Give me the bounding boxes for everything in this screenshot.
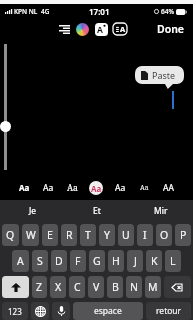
- button[interactable]: 123: [2, 302, 28, 320]
- staticText: V: [93, 280, 100, 294]
- button[interactable]: V: [88, 276, 104, 298]
- staticText: W: [26, 228, 36, 242]
- button[interactable]: P: [175, 224, 191, 246]
- button[interactable]: Aa: [108, 175, 132, 200]
- button[interactable]: Backspace: [164, 276, 191, 298]
- staticText: 64%: [161, 7, 174, 16]
- button[interactable]: L: [165, 250, 181, 272]
- staticText: G: [93, 254, 101, 268]
- staticText: Aa: [91, 183, 102, 194]
- button[interactable]: Outline: [58, 23, 71, 36]
- staticText: C: [74, 280, 81, 294]
- staticText: A: [97, 24, 103, 36]
- button[interactable]: Colour: [76, 23, 89, 36]
- staticText: Q: [6, 228, 15, 242]
- button[interactable]: B: [107, 276, 123, 298]
- button[interactable]: Aa: [36, 175, 60, 200]
- staticText: K: [151, 254, 158, 268]
- staticText: 17:01: [89, 6, 110, 17]
- staticText: Aa: [67, 182, 78, 194]
- button[interactable]: Z: [32, 276, 47, 298]
- button[interactable]: N: [126, 276, 142, 298]
- button[interactable]: O: [156, 224, 172, 246]
- staticText: H: [112, 254, 120, 268]
- staticText: M: [148, 280, 158, 294]
- staticText: Aa: [140, 183, 149, 193]
- staticText: AA: [163, 182, 174, 194]
- staticText: espace: [94, 305, 122, 317]
- staticText: Aa: [43, 182, 54, 194]
- button[interactable]: I: [137, 224, 153, 246]
- button[interactable]: Aa: [84, 175, 108, 200]
- button[interactable]: A: [12, 250, 29, 272]
- staticText: X: [55, 280, 62, 294]
- staticText: I: [143, 228, 147, 242]
- staticText: Paste: [152, 69, 176, 81]
- staticText: B: [112, 280, 119, 294]
- staticText: Aa: [19, 182, 30, 193]
- button[interactable]: Dictation: [52, 302, 70, 320]
- staticText: P: [180, 228, 187, 242]
- button[interactable]: U: [118, 224, 134, 246]
- button[interactable]: D: [51, 250, 67, 272]
- button[interactable]: M: [145, 276, 161, 298]
- button[interactable]: X: [50, 276, 66, 298]
- button[interactable]: espace: [73, 302, 143, 320]
- staticText: R: [66, 228, 73, 242]
- staticText: Y: [104, 228, 110, 242]
- button[interactable]: G: [89, 250, 105, 272]
- button[interactable]: Aa: [13, 175, 36, 200]
- button[interactable]: J: [127, 250, 143, 272]
- staticText: J: [134, 254, 137, 268]
- button[interactable]: F: [70, 250, 86, 272]
- button[interactable]: E: [42, 224, 58, 246]
- button[interactable]: retour: [146, 302, 191, 320]
- button[interactable]: H: [108, 250, 124, 272]
- button[interactable]: T: [80, 224, 96, 246]
- staticText: Done: [157, 22, 185, 36]
- button[interactable]: Text style: [95, 23, 108, 36]
- staticText: T: [85, 228, 91, 242]
- button[interactable]: Aa: [60, 175, 84, 200]
- button[interactable]: Q: [2, 224, 19, 246]
- button[interactable]: Change keyboard: [31, 302, 49, 320]
- staticText: 123: [8, 306, 22, 317]
- staticText: Je: [29, 205, 37, 217]
- staticText: S: [37, 254, 43, 268]
- staticText: O: [160, 228, 169, 242]
- staticText: E: [47, 228, 53, 242]
- staticText: 4G: [41, 7, 50, 16]
- staticText: KPN NL: [14, 7, 38, 16]
- button[interactable]: S: [32, 250, 48, 272]
- button[interactable]: Done: [149, 19, 193, 39]
- button[interactable]: Shift: [2, 276, 29, 298]
- staticText: A: [120, 24, 126, 34]
- button[interactable]: R: [61, 224, 77, 246]
- staticText: F: [75, 254, 81, 268]
- staticText: Mir: [154, 205, 168, 217]
- staticText: Z: [36, 280, 43, 294]
- staticText: A: [17, 254, 24, 268]
- button[interactable]: Mir: [129, 200, 193, 221]
- staticText: D: [55, 254, 63, 268]
- staticText: L: [170, 254, 176, 268]
- button[interactable]: Aa: [132, 175, 156, 200]
- staticText: N: [130, 280, 138, 294]
- button[interactable]: Paste: [135, 66, 184, 84]
- button[interactable]: Et: [65, 200, 129, 221]
- staticText: Et: [93, 205, 101, 217]
- button[interactable]: Je: [0, 200, 65, 221]
- button[interactable]: Paragraph style: [113, 22, 127, 36]
- button[interactable]: AA: [156, 175, 180, 200]
- button[interactable]: K: [146, 250, 162, 272]
- staticText: retour: [156, 305, 182, 317]
- button[interactable]: C: [69, 276, 85, 298]
- button[interactable]: Y: [99, 224, 115, 246]
- staticText: U: [122, 228, 130, 242]
- button[interactable]: W: [22, 224, 39, 246]
- staticText: Aa: [115, 182, 126, 194]
